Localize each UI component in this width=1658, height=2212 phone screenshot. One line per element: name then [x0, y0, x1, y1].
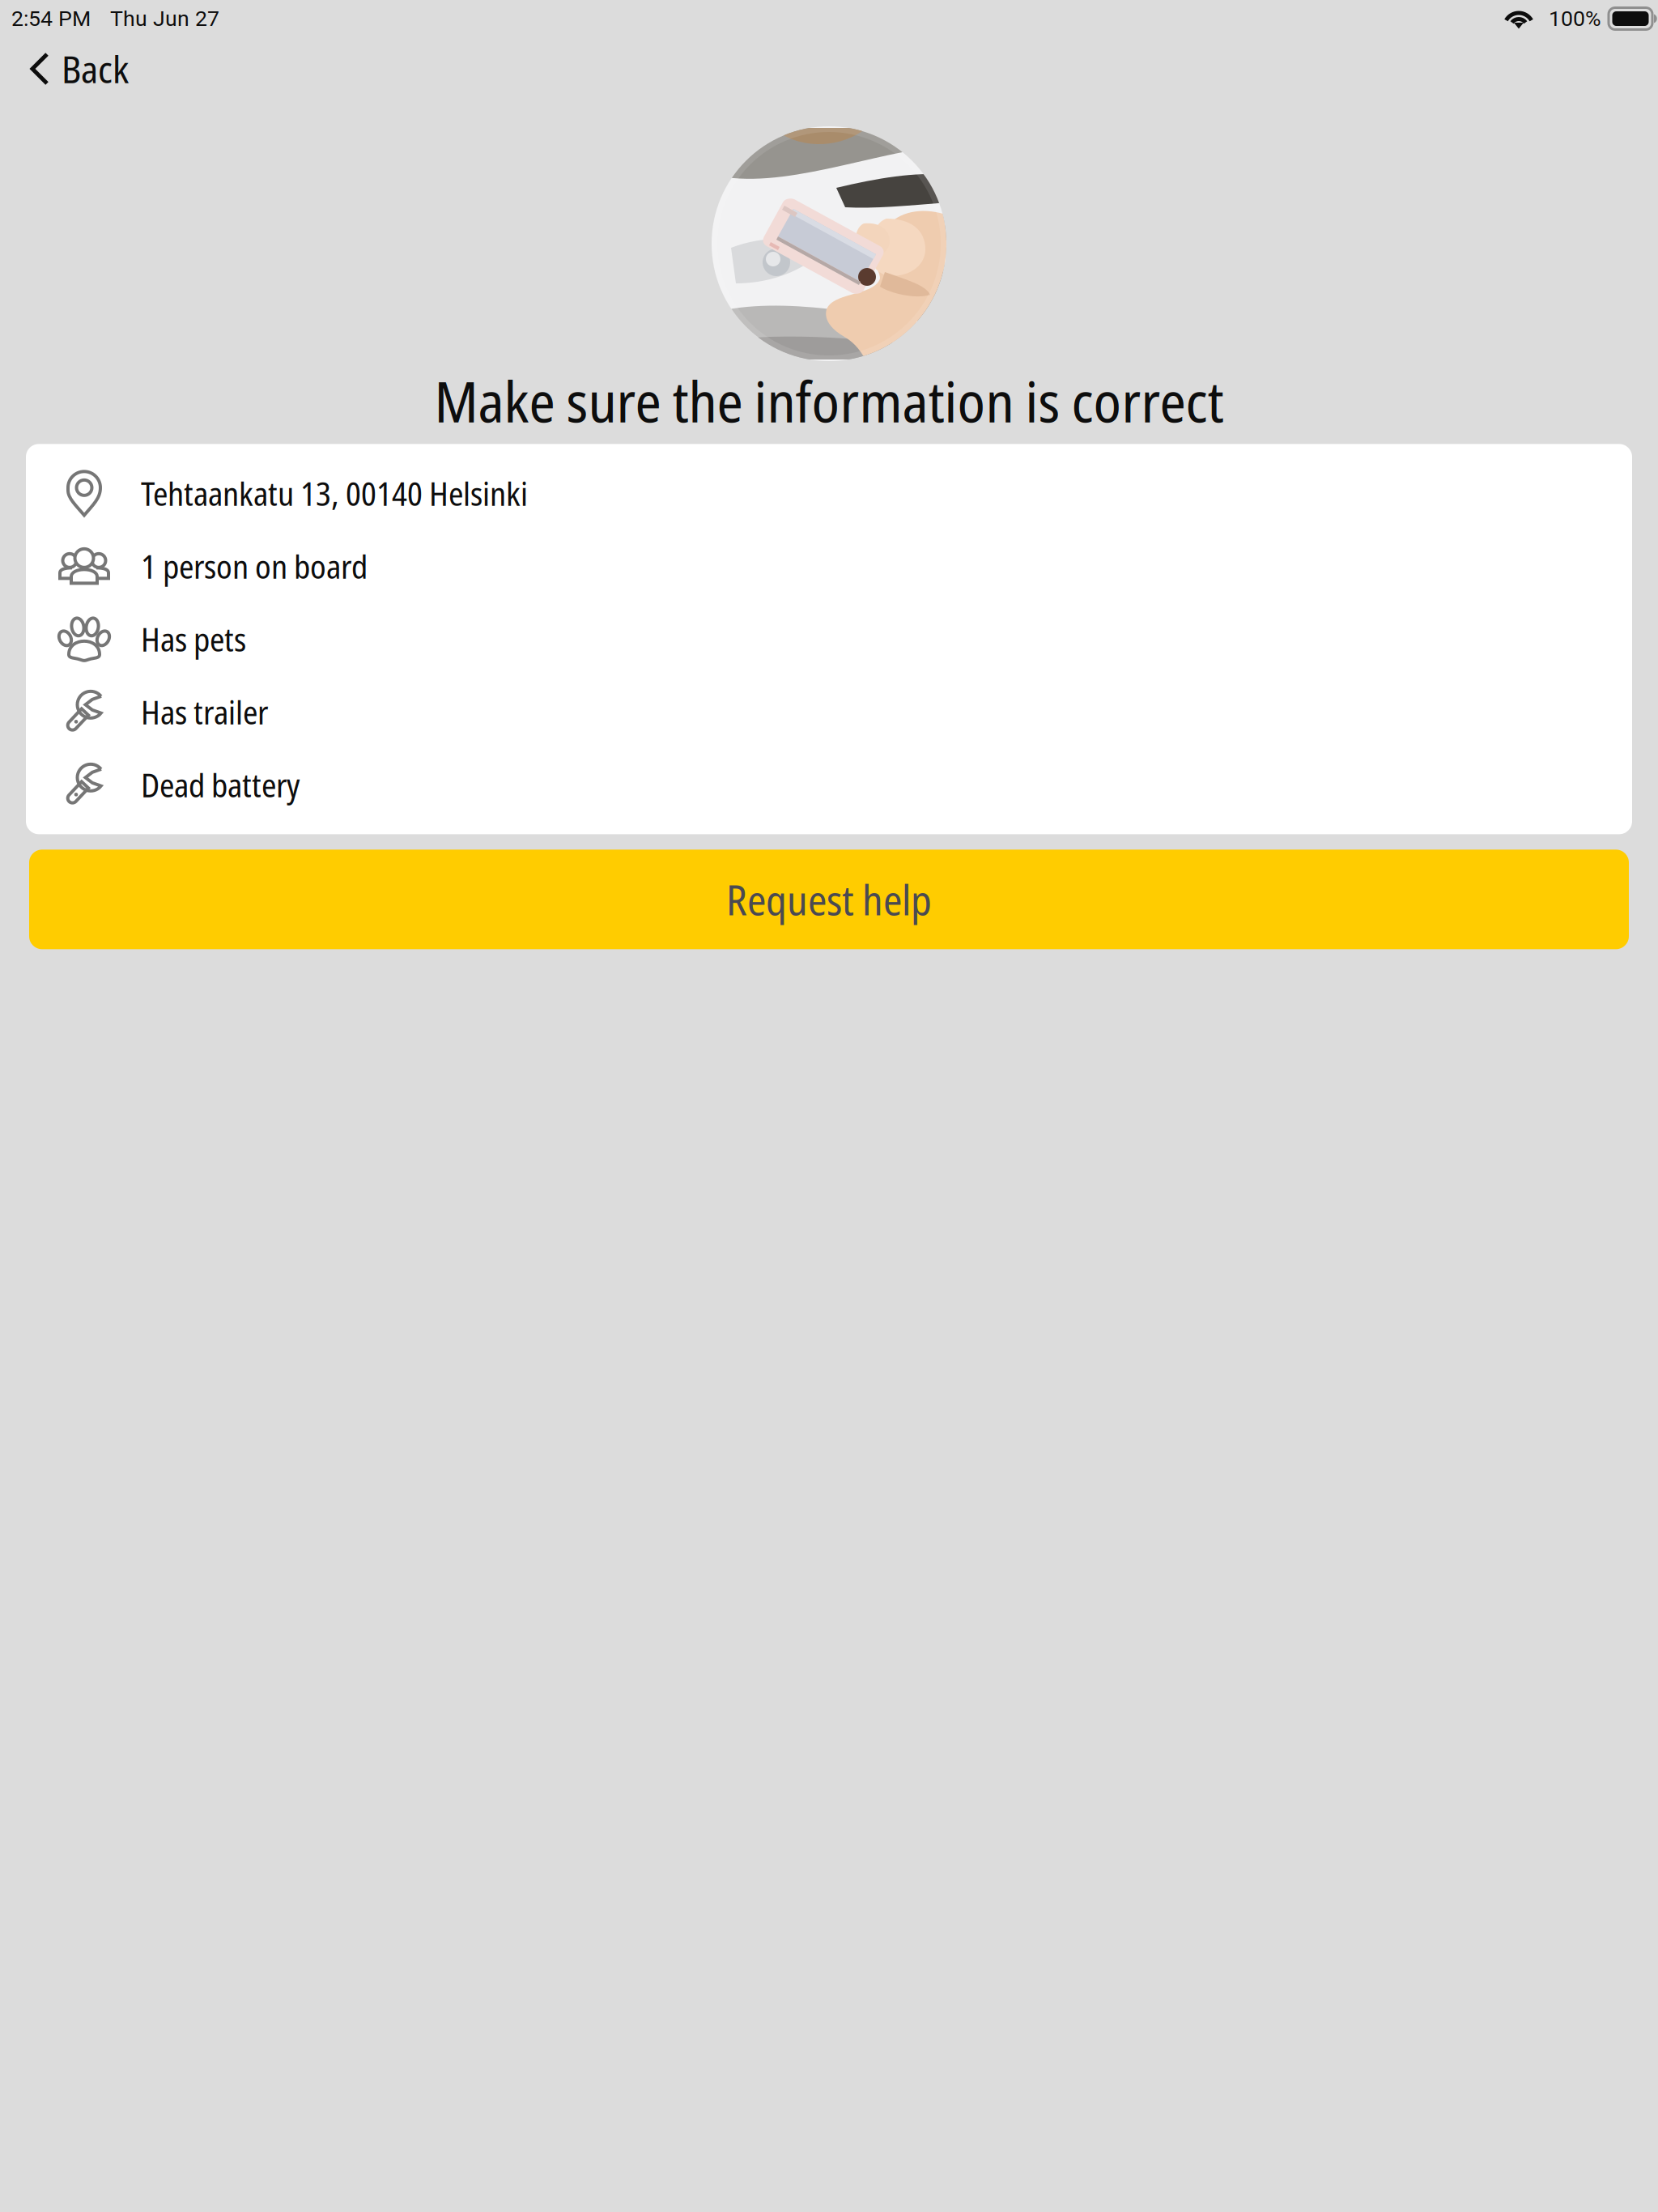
staticText: Make sure the information is correct [434, 362, 1224, 439]
staticText: Tehtaankatu 13, 00140 Helsinki [141, 471, 528, 515]
staticText: 100% [1549, 6, 1601, 31]
staticText: Has trailer [141, 690, 268, 734]
staticText: Has pets [141, 617, 246, 661]
button[interactable]: Back [0, 37, 155, 100]
staticText: Request help [726, 871, 932, 927]
staticText: Back [62, 43, 129, 94]
staticText: 2:54 PM [11, 6, 91, 31]
staticText: Thu Jun 27 [110, 6, 219, 31]
staticText: 1 person on board [141, 544, 368, 588]
button[interactable]: Request help [29, 850, 1629, 949]
staticText: Dead battery [141, 763, 300, 807]
